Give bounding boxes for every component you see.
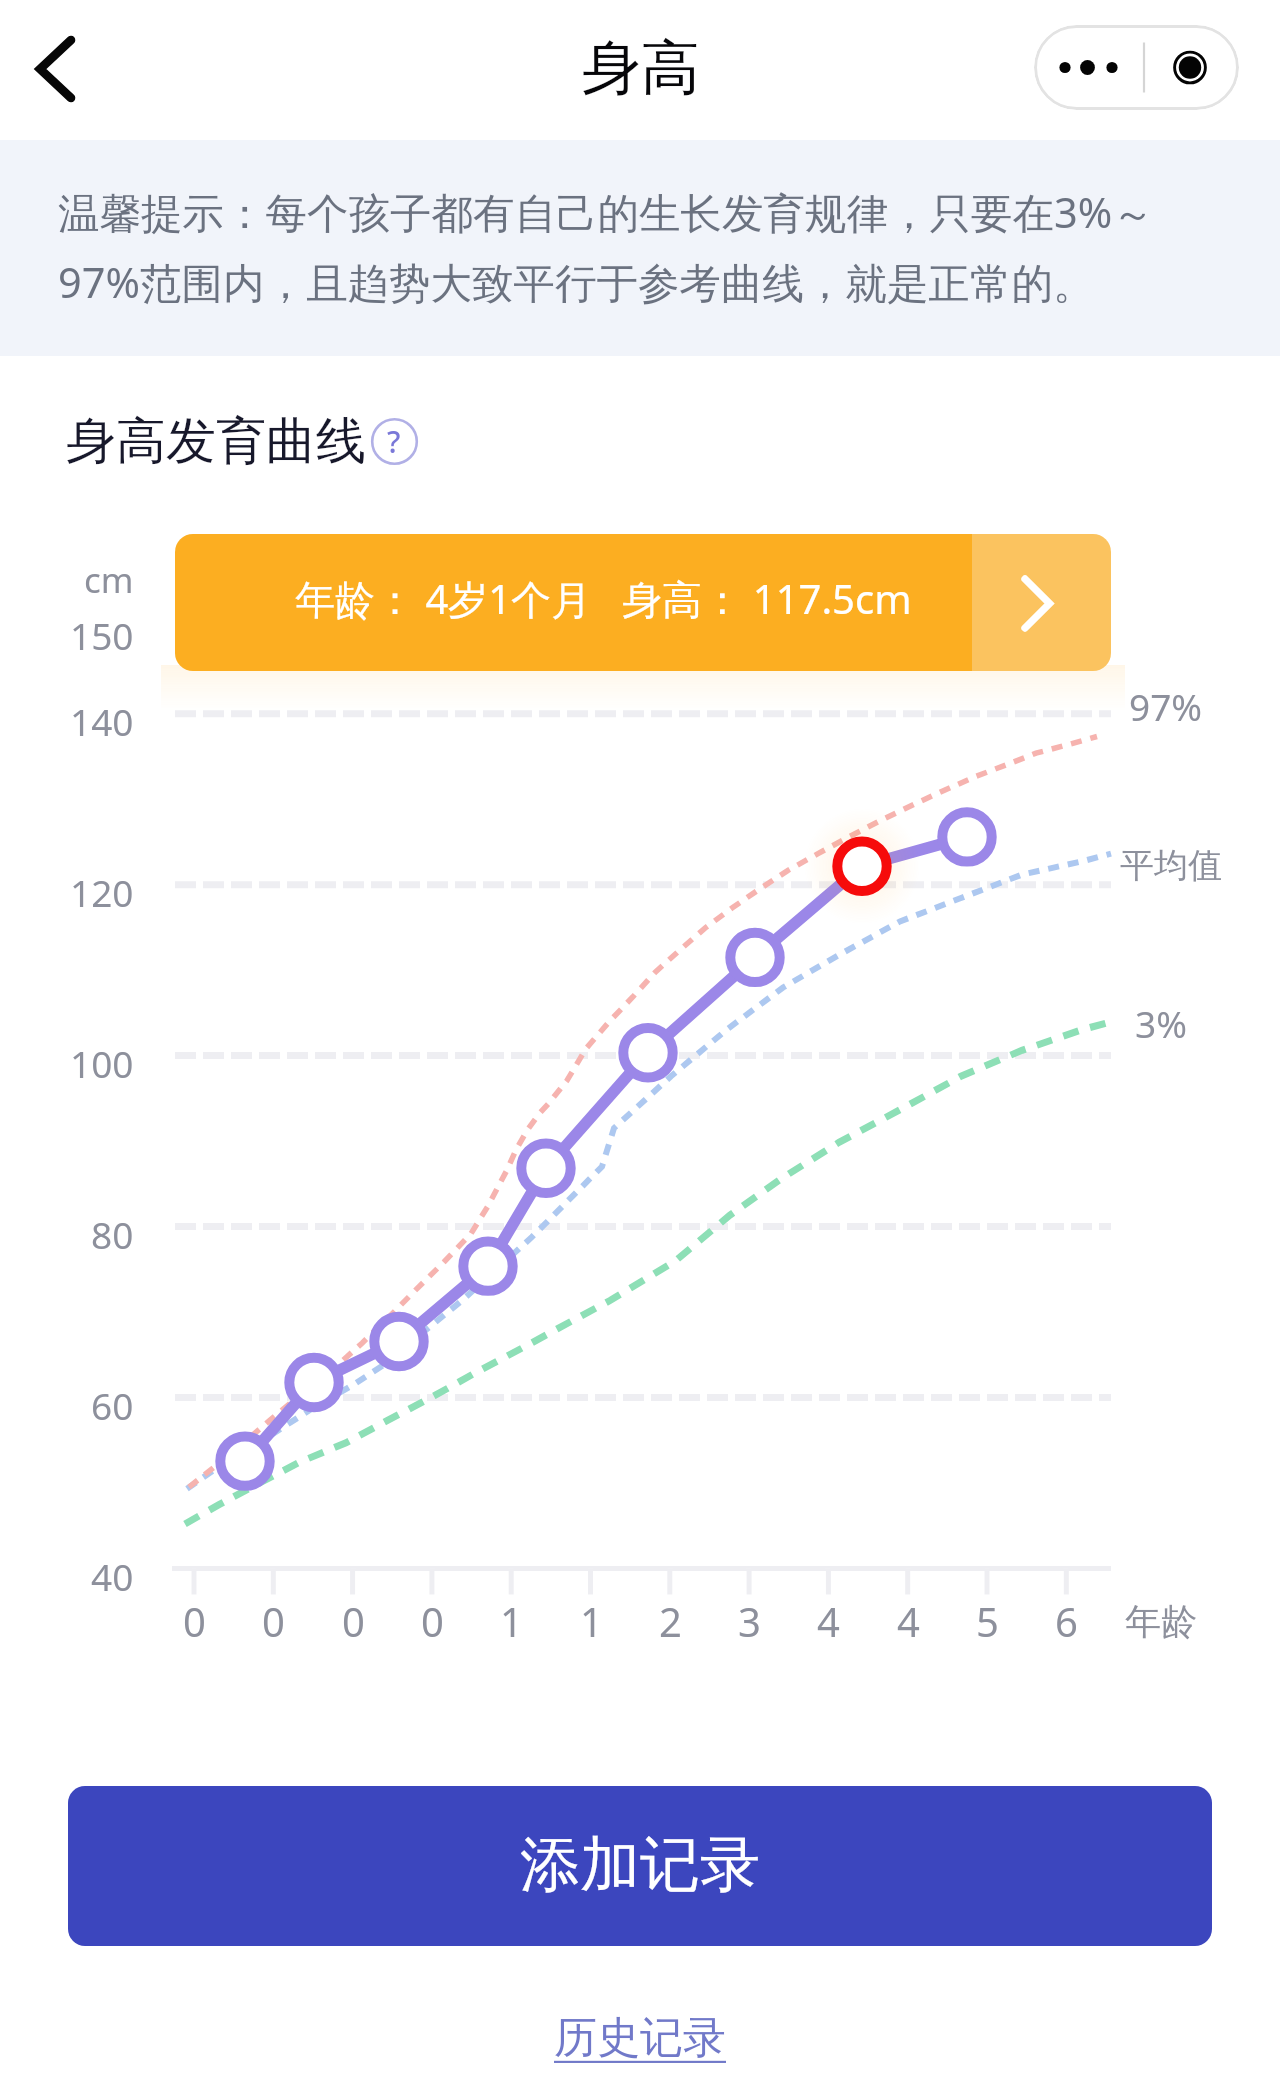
staticText: 97% [1129, 681, 1203, 731]
staticText: 6 [1055, 1594, 1078, 1648]
staticText: 年龄： 4岁1个月 身高： 117.5cm [295, 571, 912, 626]
staticText: 年龄 [1125, 1599, 1197, 1644]
staticText: 平均值 [1120, 844, 1222, 887]
button[interactable]: 年龄： 4岁1个月 身高： 117.5cm [175, 534, 1111, 671]
staticText: 5 [976, 1594, 999, 1648]
staticText: ? [387, 421, 401, 462]
staticText: 0 [262, 1594, 285, 1648]
button[interactable]: 更多功能 [1034, 25, 1239, 110]
staticText: 温馨提示：每个孩子都有自己的生长发育规律，只要在3%～ 97%范围内，且趋势大致… [58, 184, 1154, 310]
staticText: 3% [1135, 998, 1187, 1048]
button[interactable]: 历史记录 [541, 2006, 739, 2070]
staticText: 1 [580, 1594, 603, 1648]
staticText: 身高 [582, 31, 700, 105]
staticText: 历史记录 [554, 2011, 726, 2065]
staticText: 120 [70, 867, 134, 917]
staticText: 1 [500, 1594, 523, 1648]
staticText: 80 [91, 1209, 134, 1259]
button[interactable]: 说明 [366, 413, 422, 469]
staticText: 100 [70, 1038, 134, 1088]
button[interactable]: 返回 [12, 16, 98, 122]
staticText: 4 [897, 1594, 920, 1648]
staticText: 40 [91, 1551, 134, 1601]
staticText: 60 [91, 1380, 134, 1430]
staticText: 0 [183, 1594, 206, 1648]
staticText: 添加记录 [520, 1827, 760, 1903]
staticText: 0 [342, 1594, 365, 1648]
staticText: 3 [738, 1594, 761, 1648]
staticText: 0 [421, 1594, 444, 1648]
staticText: 140 [70, 696, 134, 746]
staticText: 2 [659, 1594, 682, 1648]
staticText: 身高发育曲线 [66, 410, 366, 473]
staticText: cm [84, 556, 134, 604]
button[interactable]: 添加记录 [68, 1786, 1212, 1946]
staticText: 4 [817, 1594, 840, 1648]
staticText: 150 [70, 610, 134, 660]
